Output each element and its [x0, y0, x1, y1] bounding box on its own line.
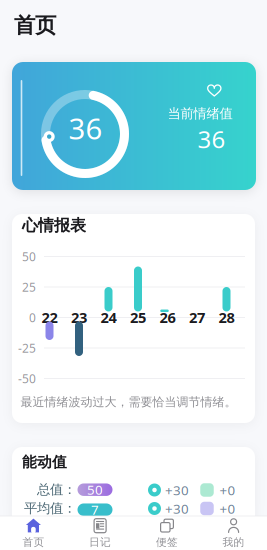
staticText: 50 [87, 481, 103, 498]
staticText: 50 [22, 248, 36, 264]
button[interactable]: 日记 [68, 516, 132, 550]
staticText: 平均值： [24, 500, 76, 516]
staticText: +30 [165, 481, 189, 499]
staticText: 26 [159, 308, 175, 327]
button[interactable]: 便签 [135, 516, 199, 550]
button[interactable]: 首页 [1, 516, 65, 550]
staticText: -50 [18, 370, 36, 386]
staticText: 23 [71, 308, 87, 327]
staticText: +0 [219, 500, 235, 517]
staticText: 能动值 [22, 453, 67, 471]
staticText: 日记 [89, 536, 111, 549]
staticText: -25 [18, 340, 36, 356]
staticText: 27 [189, 308, 205, 327]
staticText: 首页 [22, 536, 44, 549]
staticText: 28 [218, 308, 234, 327]
staticText: 当前情绪值 [167, 105, 232, 122]
staticText: +30 [165, 500, 189, 517]
staticText: 我的 [223, 536, 245, 549]
button[interactable]: 收藏 [207, 82, 222, 98]
staticText: 24 [100, 308, 116, 327]
staticText: 首页 [14, 12, 56, 39]
button[interactable]: 我的 [202, 516, 266, 550]
staticText: 25 [130, 308, 146, 327]
staticText: 0 [29, 309, 36, 325]
staticText: 总值： [37, 481, 76, 498]
staticText: 36 [197, 123, 225, 155]
staticText: 7 [91, 501, 99, 518]
staticText: 36 [68, 108, 102, 147]
staticText: +0 [219, 481, 235, 499]
staticText: 心情报表 [22, 215, 86, 235]
staticText: 22 [41, 308, 57, 327]
staticText: 25 [22, 279, 36, 295]
staticText: 便签 [156, 536, 178, 549]
staticText: 最近情绪波动过大，需要恰当调节情绪。 [20, 395, 236, 409]
